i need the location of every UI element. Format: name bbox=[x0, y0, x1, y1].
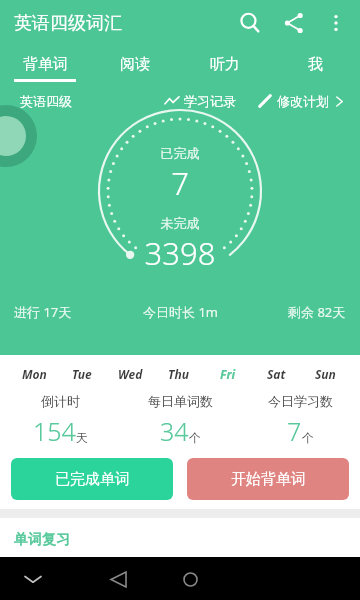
staticText: 今日时长 1m bbox=[143, 303, 218, 321]
staticText: 听力 bbox=[210, 55, 240, 74]
button[interactable]: More options bbox=[316, 3, 356, 43]
staticText: 我 bbox=[308, 55, 323, 74]
button[interactable]: Back bbox=[103, 564, 133, 594]
button[interactable]: 我 bbox=[270, 46, 360, 82]
button[interactable]: Share bbox=[272, 1, 316, 45]
button[interactable]: 开始背单词 bbox=[187, 458, 349, 500]
staticText: 未完成 bbox=[0, 215, 360, 231]
staticText: 个 bbox=[302, 430, 314, 445]
button[interactable]: 阅读 bbox=[90, 46, 180, 82]
staticText: 7 bbox=[287, 414, 302, 448]
staticText: 天 bbox=[76, 430, 88, 445]
staticText: 每日单词数 bbox=[148, 393, 213, 409]
button[interactable]: 听力 bbox=[180, 46, 270, 82]
button[interactable]: 修改计划 bbox=[254, 89, 348, 113]
staticText: 剩余 82天 bbox=[288, 303, 346, 321]
staticText: 3398 bbox=[0, 232, 360, 274]
staticText: 154 bbox=[33, 414, 76, 448]
staticText: 学习记录 bbox=[184, 93, 236, 109]
staticText: Thu bbox=[168, 366, 189, 382]
button[interactable]: 背单词 bbox=[0, 46, 90, 82]
staticText: 34 bbox=[160, 414, 189, 448]
staticText: 倒计时 bbox=[41, 393, 80, 409]
button[interactable]: 学习记录 bbox=[161, 89, 240, 113]
staticText: Mon bbox=[22, 366, 47, 382]
staticText: 进行 17天 bbox=[14, 303, 72, 321]
staticText: 今日学习数 bbox=[268, 393, 333, 409]
staticText: Fri bbox=[220, 366, 236, 382]
staticText: 个 bbox=[189, 430, 201, 445]
staticText: 单词复习 bbox=[14, 531, 70, 549]
staticText: 开始背单词 bbox=[231, 470, 306, 489]
button[interactable]: 已完成单词 bbox=[11, 458, 173, 500]
staticText: Wed bbox=[118, 366, 143, 382]
staticText: Tue bbox=[72, 366, 92, 382]
staticText: 7 bbox=[0, 162, 360, 204]
button[interactable]: Hide keyboard bbox=[18, 564, 48, 594]
button[interactable]: Search bbox=[228, 1, 272, 45]
staticText: Sun bbox=[315, 366, 336, 382]
staticText: 英语四级词汇 bbox=[14, 12, 122, 35]
staticText: 已完成单词 bbox=[55, 470, 130, 489]
staticText: 修改计划 bbox=[277, 93, 329, 109]
button[interactable]: Home bbox=[175, 564, 205, 594]
staticText: 英语四级 bbox=[20, 93, 72, 109]
staticText: 已完成 bbox=[0, 145, 360, 161]
staticText: Sat bbox=[267, 366, 286, 382]
staticText: 背单词 bbox=[23, 55, 68, 74]
staticText: 阅读 bbox=[120, 55, 150, 74]
